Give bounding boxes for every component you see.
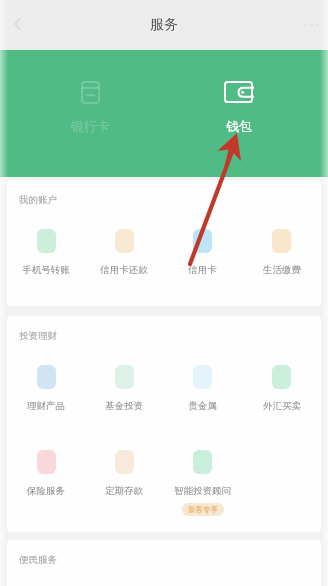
staticText: 信用卡还款 — [100, 264, 148, 276]
staticText: 外汇买卖 — [263, 400, 301, 412]
staticText: 信用卡 — [188, 264, 217, 276]
button[interactable]: 信用卡 — [163, 229, 242, 276]
button[interactable]: 外汇买卖 — [242, 365, 321, 412]
button[interactable]: 定期存款 — [85, 450, 163, 497]
staticText: 生活缴费 — [263, 264, 301, 276]
staticText: 我的账户 — [19, 194, 57, 206]
button[interactable]: 信用卡还款 — [85, 229, 163, 276]
staticText: 智能投资顾问 — [174, 485, 231, 497]
staticText: 理财产品 — [27, 400, 65, 412]
staticText: 贵金属 — [188, 400, 217, 412]
staticText: 基金投资 — [105, 400, 143, 412]
staticText: 钱包 — [226, 118, 252, 134]
staticText: 投资理财 — [19, 330, 57, 342]
button[interactable]: 钱包 — [164, 50, 312, 134]
staticText: 定期存款 — [105, 485, 143, 497]
button[interactable]: 生活缴费 — [242, 229, 321, 276]
staticText: 服务 — [150, 16, 178, 34]
button[interactable]: 银行卡 — [16, 50, 164, 134]
button[interactable]: 保险服务 — [7, 450, 85, 497]
button[interactable]: 理财产品 — [7, 365, 85, 412]
button[interactable]: 智能投资顾问 — [163, 450, 242, 516]
staticText: 便民服务 — [19, 554, 57, 566]
button[interactable]: 贵金属 — [163, 365, 242, 412]
staticText: 新客专享 — [188, 505, 218, 514]
staticText: 手机号转账 — [22, 264, 70, 276]
button[interactable]: 手机号转账 — [7, 229, 85, 276]
button[interactable]: 基金投资 — [85, 365, 163, 412]
staticText: 保险服务 — [27, 485, 65, 497]
staticText: 银行卡 — [71, 118, 110, 134]
